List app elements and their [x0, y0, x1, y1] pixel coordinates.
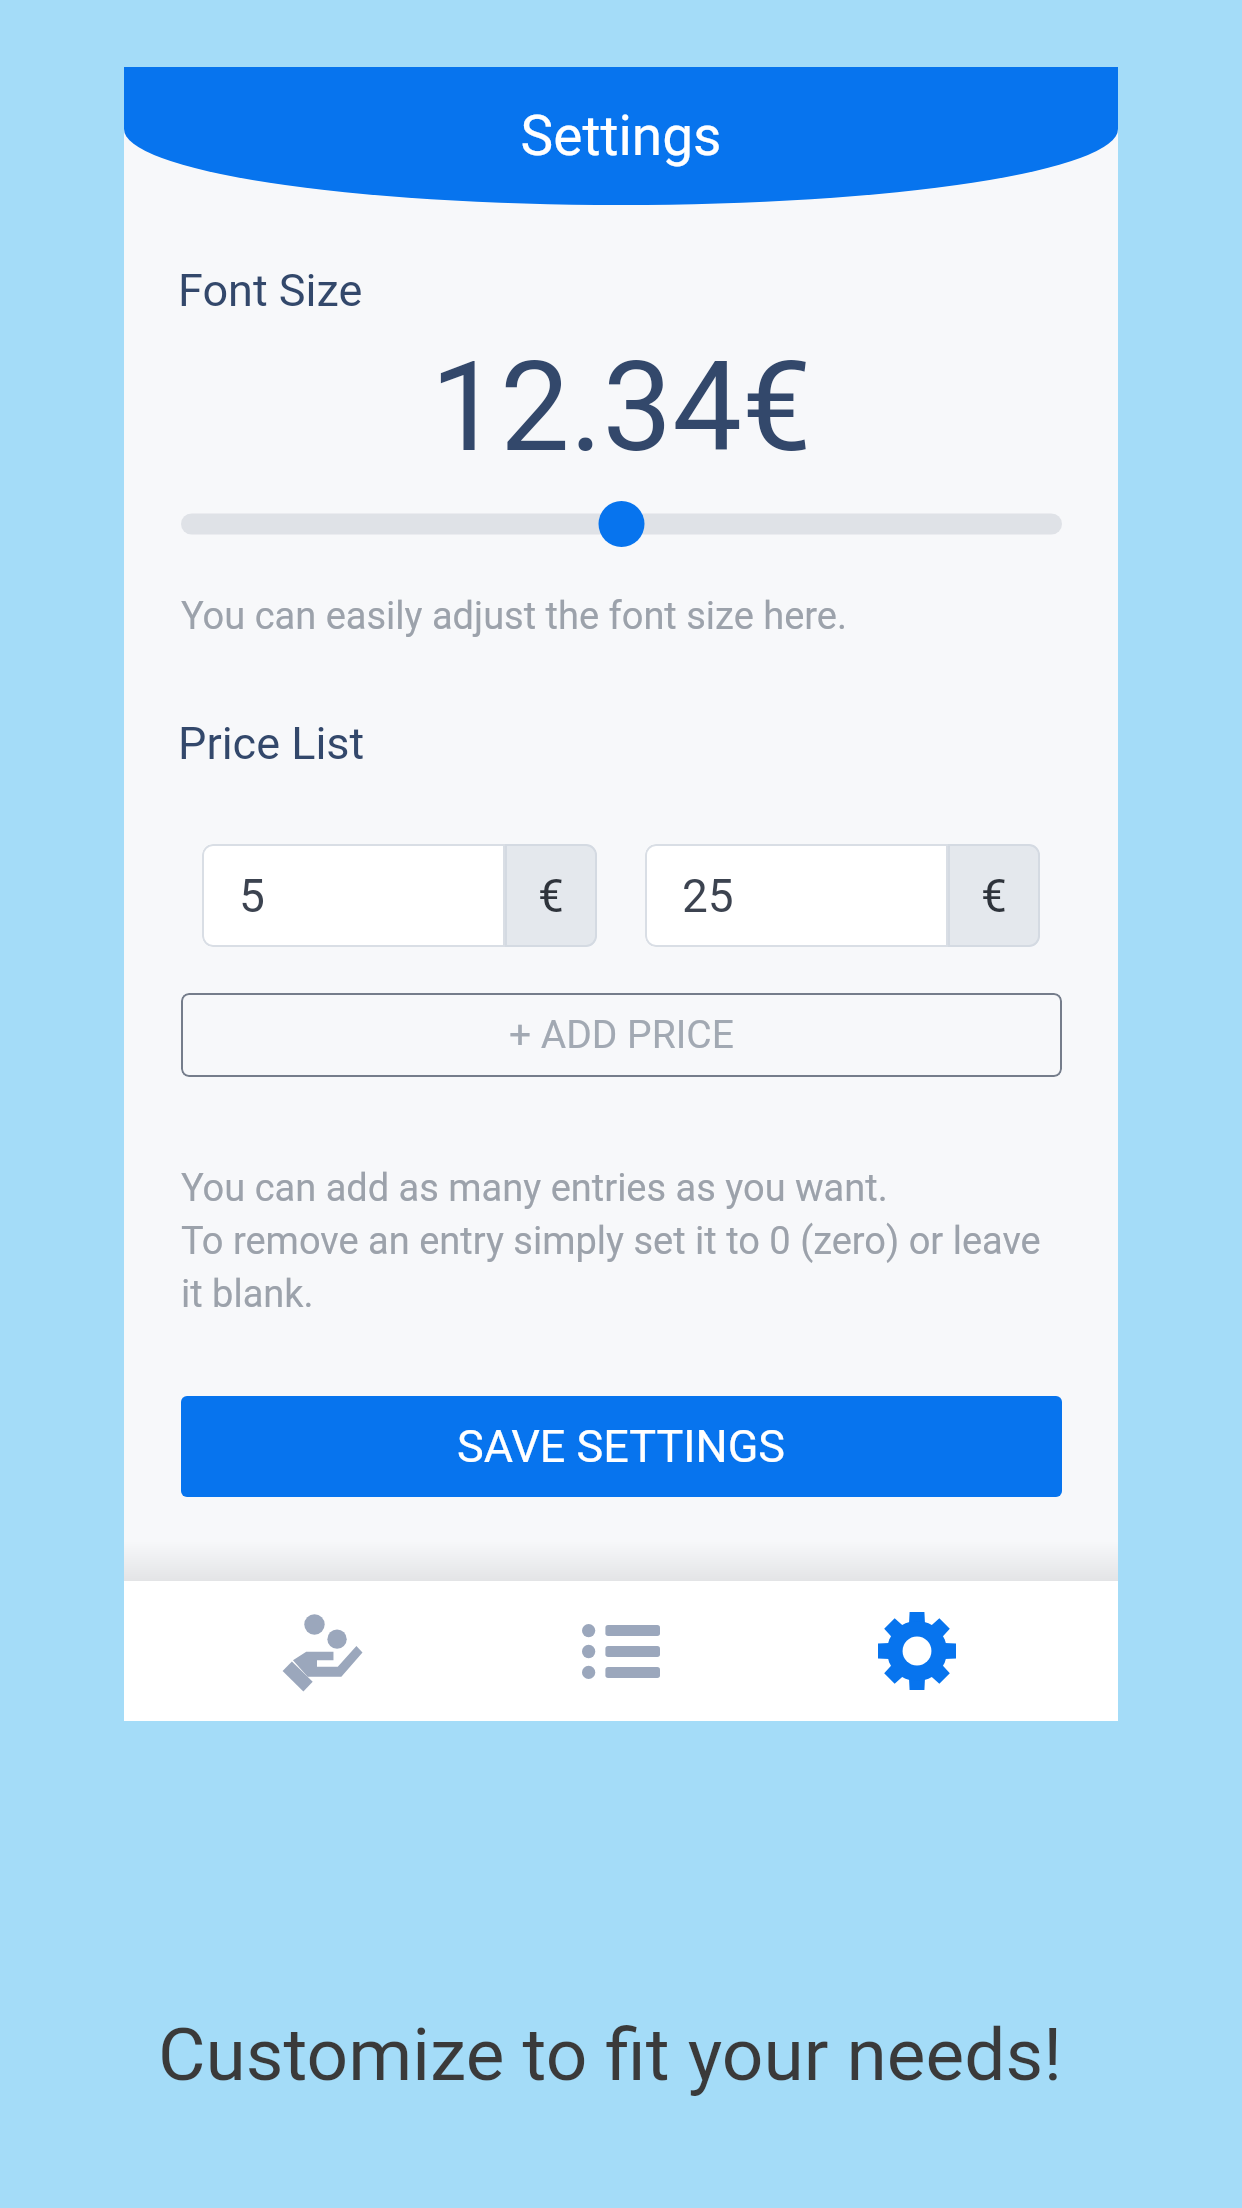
button[interactable]: List — [473, 1581, 769, 1721]
staticText: 12.34€ — [124, 335, 1118, 480]
button[interactable]: 5 — [202, 844, 505, 947]
staticText: Customize to fit your needs! — [158, 2012, 1062, 2098]
button[interactable] — [181, 501, 1062, 547]
staticText: SAVE SETTINGS — [457, 1420, 786, 1473]
button[interactable]: Settings — [769, 1581, 1065, 1721]
staticText: You can add as many entries as you want.… — [181, 1166, 1056, 1316]
button[interactable]: Donate — [177, 1581, 473, 1721]
staticText: Font Size — [178, 264, 363, 317]
staticText: € — [538, 869, 564, 923]
button[interactable]: SAVE SETTINGS — [181, 1396, 1062, 1497]
staticText: 25 — [682, 869, 734, 923]
staticText: Settings — [124, 104, 1118, 168]
staticText: Price List — [178, 717, 365, 770]
button[interactable]: € — [505, 844, 597, 947]
staticText: € — [981, 869, 1007, 923]
button[interactable]: € — [948, 844, 1040, 947]
staticText: + ADD PRICE — [509, 1012, 734, 1058]
button[interactable]: + ADD PRICE — [181, 993, 1062, 1077]
staticText: You can easily adjust the font size here… — [181, 594, 847, 639]
staticText: 5 — [239, 869, 265, 923]
button[interactable]: 25 — [645, 844, 948, 947]
